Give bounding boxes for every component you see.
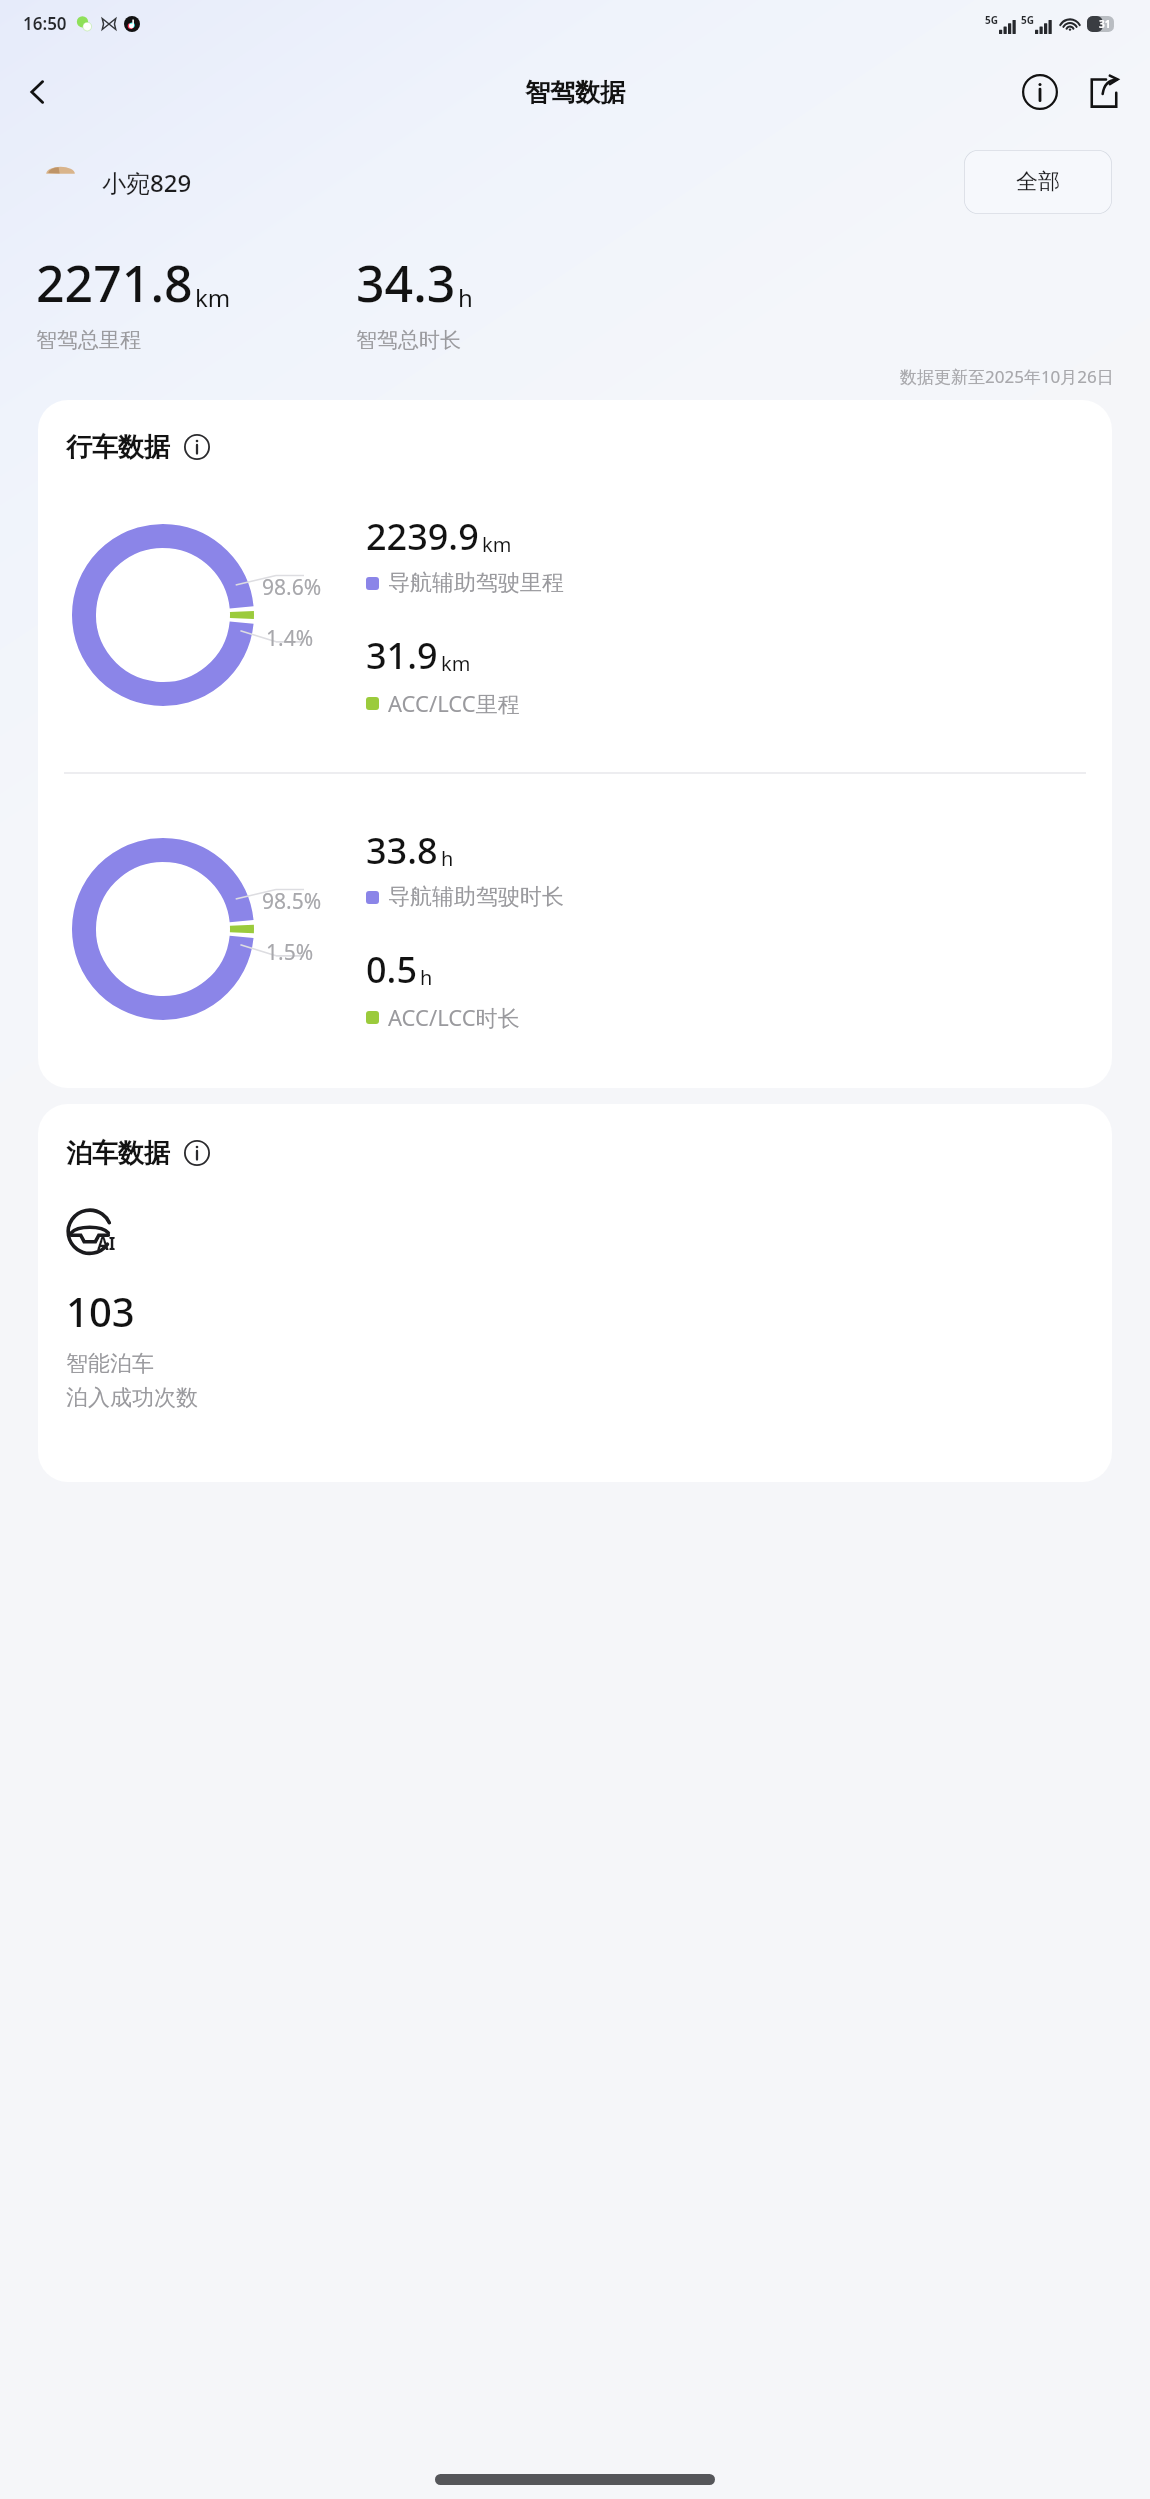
staticText: 智驾总时长 [356, 327, 461, 353]
staticText: km [441, 650, 471, 677]
staticText: 智驾总里程 [36, 327, 141, 353]
button[interactable]: 泊车数据 info [180, 1136, 214, 1170]
button[interactable]: Share [1076, 64, 1132, 120]
staticText: AI [97, 1232, 116, 1255]
staticText: 98.6% [262, 573, 322, 602]
staticText: 16:50 [23, 12, 67, 35]
button[interactable]: Back [10, 64, 66, 120]
staticText: 1.4% [266, 624, 314, 653]
staticText: ACC/LCC里程 [388, 688, 520, 718]
button[interactable]: 全部 [964, 150, 1112, 214]
staticText: h [441, 845, 454, 872]
staticText: 34.3 [356, 249, 456, 317]
staticText: ACC/LCC时长 [388, 1002, 520, 1032]
staticText: 33.8 [366, 826, 438, 875]
staticText: 5G [985, 13, 998, 27]
staticText: 智驾数据 [525, 77, 625, 108]
staticText: 31.9 [366, 631, 438, 680]
staticText: h [420, 964, 433, 991]
staticText: 行车数据 [66, 431, 170, 464]
staticText: km [195, 281, 231, 314]
staticText: 全部 [1016, 168, 1060, 196]
staticText: 小宛829 [102, 166, 192, 199]
staticText: 5G [1021, 13, 1034, 27]
staticText: 0.5 [366, 945, 417, 994]
staticText: 导航辅助驾驶时长 [388, 883, 564, 911]
staticText: 泊入成功次数 [66, 1384, 198, 1412]
staticText: 98.5% [262, 887, 322, 916]
button[interactable]: 行车数据 info [180, 430, 214, 464]
staticText: 2239.9 [366, 512, 479, 561]
staticText: 泊车数据 [66, 1137, 170, 1170]
staticText: km [482, 531, 512, 558]
button[interactable]: Info [1012, 64, 1068, 120]
staticText: 103 [66, 1284, 135, 1338]
staticText: 智能泊车 [66, 1350, 154, 1378]
staticText: 数据更新至2025年10月26日 [900, 365, 1114, 388]
staticText: 31 [1099, 17, 1111, 31]
staticText: h [458, 281, 473, 314]
staticText: 1.5% [266, 938, 314, 967]
staticText: 2271.8 [36, 249, 193, 317]
staticText: 导航辅助驾驶里程 [388, 569, 564, 597]
